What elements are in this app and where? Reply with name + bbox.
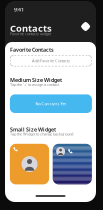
button[interactable]: Orange small widget preview	[10, 144, 49, 184]
staticText: Small Size Widget	[10, 126, 56, 133]
staticText: Favorite contacts widget	[10, 31, 51, 36]
staticText: Tap the '+' to assign a contact	[10, 82, 59, 87]
staticText: No Contacts Yet	[35, 101, 66, 106]
staticText: Favorite Contacts	[10, 46, 54, 53]
staticText: Tap the Widget to change background	[10, 131, 73, 136]
button[interactable]: Add Favorite Contacts	[10, 55, 92, 66]
button[interactable]: Navy small widget preview	[53, 144, 92, 184]
staticText: Contacts	[10, 22, 52, 34]
staticText: Medium Size Widget	[10, 76, 62, 83]
button[interactable]: No Contacts Yet	[10, 94, 92, 113]
staticText: 9:41	[14, 6, 24, 13]
button[interactable]: Help	[80, 21, 91, 32]
staticText: Add Favorite Contacts	[32, 58, 70, 63]
